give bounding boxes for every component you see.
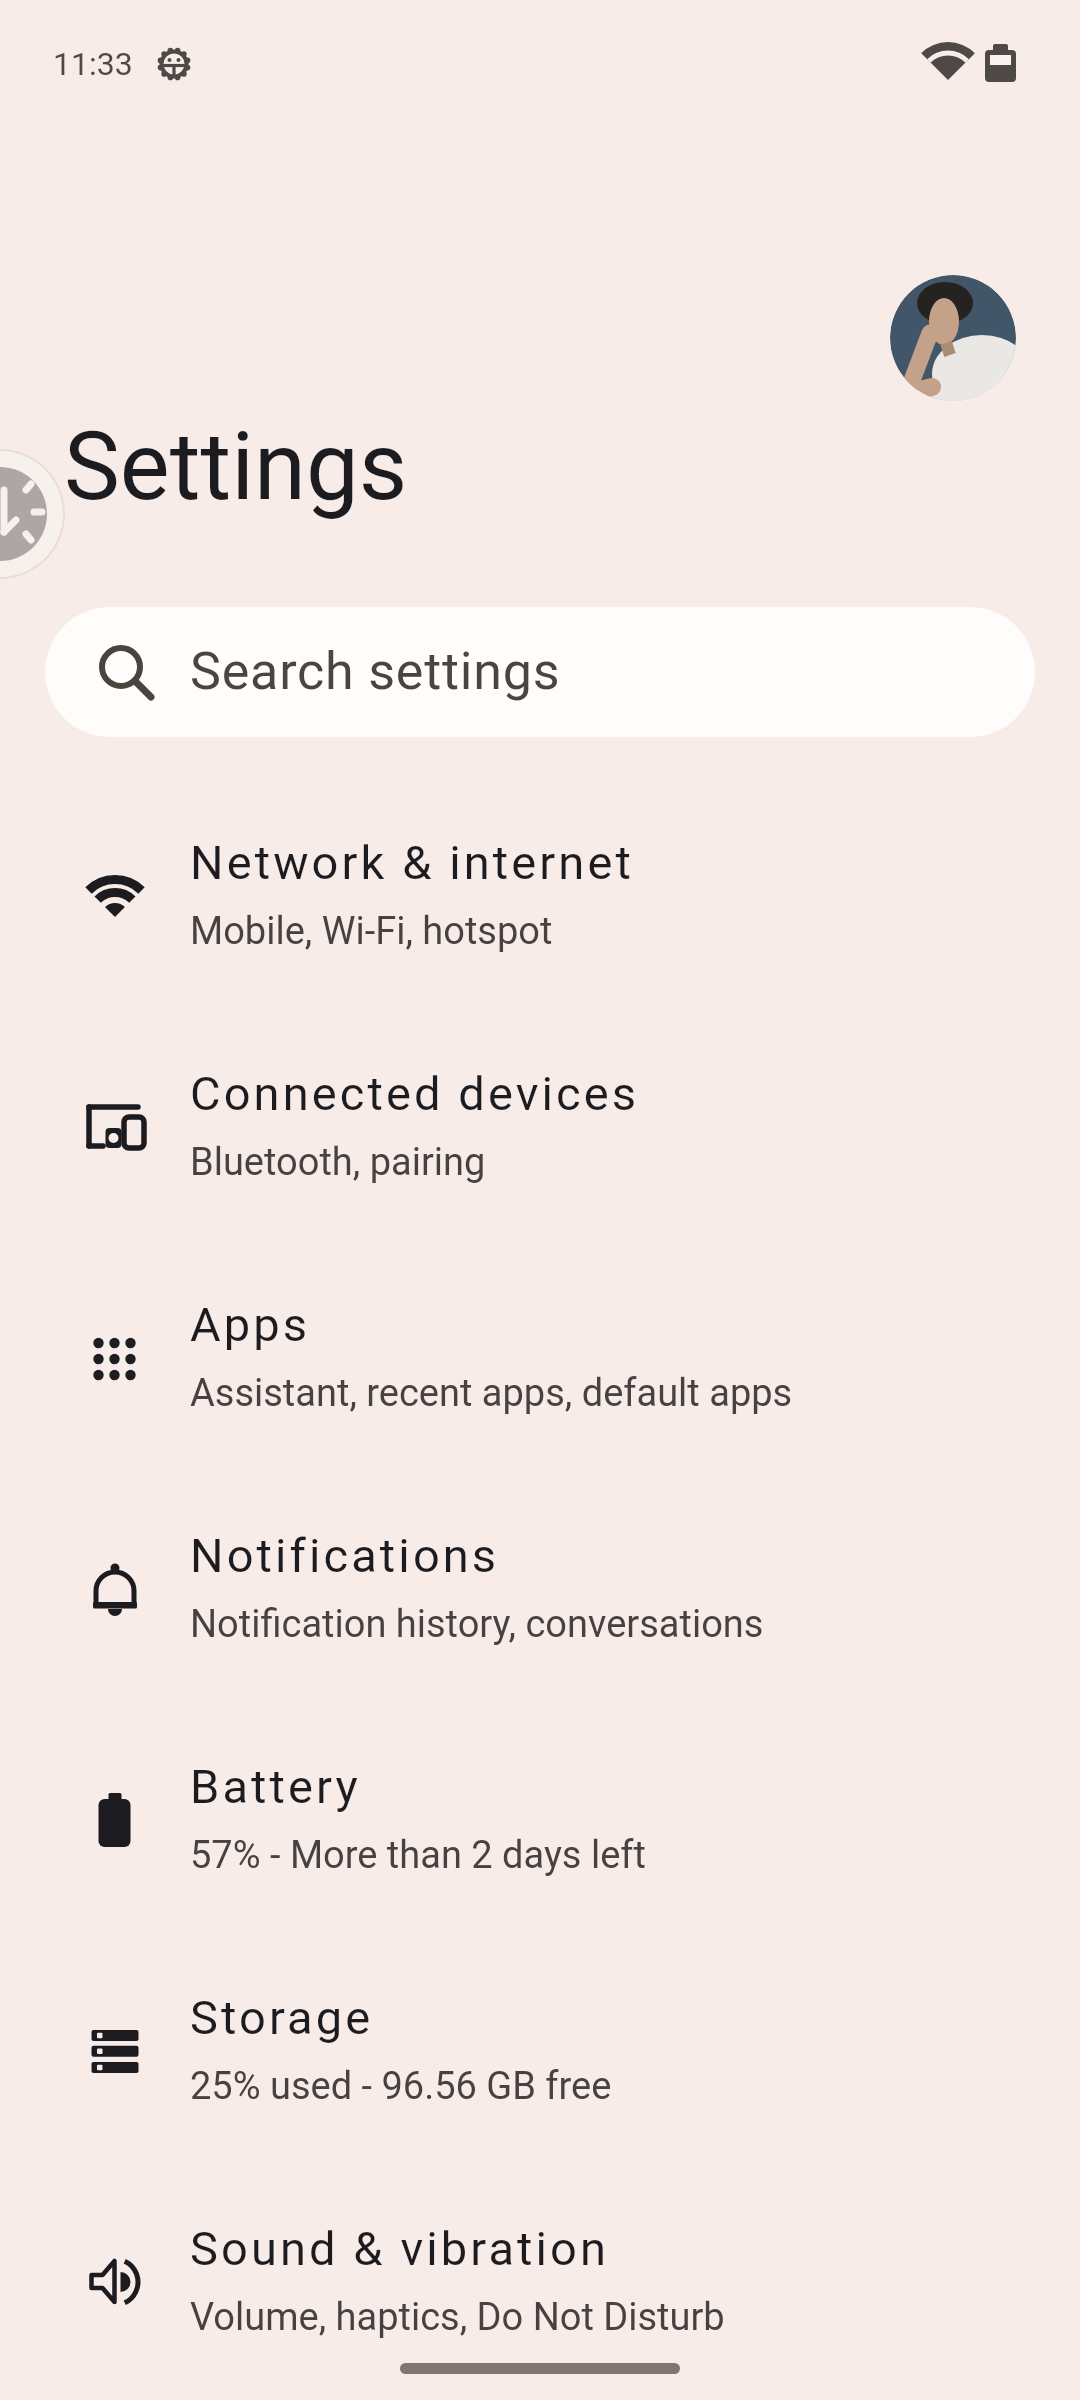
staticText: 57% - More than 2 days left (190, 1833, 646, 1878)
button[interactable]: Battery (0, 1735, 1080, 1966)
button[interactable]: Storage (0, 1966, 1080, 2197)
button[interactable]: Sound & vibration (0, 2197, 1080, 2400)
staticText: Battery (190, 1759, 361, 1814)
staticText: Network & internet (190, 835, 634, 890)
staticText: Assistant, recent apps, default apps (190, 1371, 793, 1416)
staticText: Apps (190, 1297, 311, 1352)
staticText: Volume, haptics, Do Not Disturb (190, 2295, 725, 2340)
button[interactable] (890, 275, 1016, 401)
button[interactable]: Search settings (45, 607, 1035, 737)
button[interactable]: Network & internet (0, 811, 1080, 1042)
staticText: Mobile, Wi-Fi, hotspot (190, 909, 553, 954)
button[interactable]: Apps (0, 1273, 1080, 1504)
button[interactable]: Notifications (0, 1504, 1080, 1735)
staticText: Notifications (190, 1528, 500, 1583)
staticText: Bluetooth, pairing (190, 1140, 486, 1185)
staticText: Notification history, conversations (190, 1602, 764, 1647)
staticText: Search settings (190, 641, 561, 702)
staticText: Storage (190, 1990, 374, 2045)
button[interactable] (0, 450, 70, 580)
staticText: Connected devices (190, 1066, 640, 1121)
staticText: 25% used - 96.56 GB free (190, 2064, 612, 2109)
staticText: 11:33 (53, 45, 133, 83)
staticText: Sound & vibration (190, 2221, 610, 2276)
button[interactable]: Connected devices (0, 1042, 1080, 1273)
staticText: Settings (64, 412, 408, 522)
